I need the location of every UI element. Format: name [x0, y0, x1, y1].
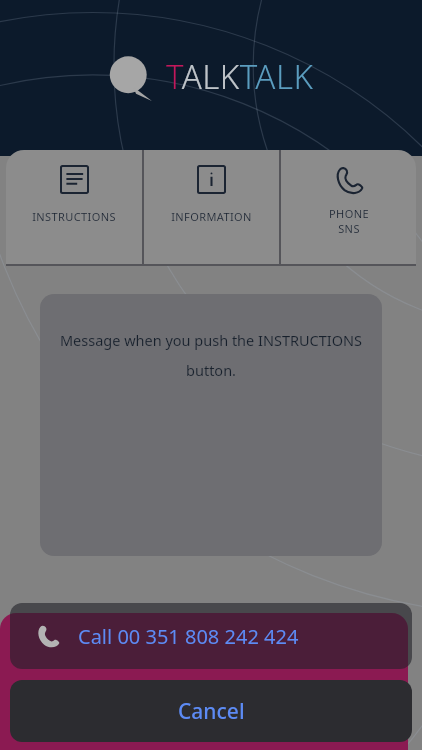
- button[interactable]: Cancel: [10, 680, 412, 742]
- button[interactable]: Information: [144, 150, 279, 266]
- other: Phone: [335, 166, 363, 194]
- staticText: TALKTALK: [166, 54, 314, 99]
- other: Instructions: [61, 166, 88, 193]
- staticText: INFORMATION: [171, 209, 252, 224]
- button[interactable]: Phone: [281, 150, 416, 266]
- staticText: Call 00 351 808 242 424: [78, 623, 299, 650]
- staticText: SNS: [338, 221, 360, 236]
- other: Information: [198, 166, 225, 193]
- button[interactable]: Call 00 351 808 242 424: [10, 603, 412, 669]
- staticText: INSTRUCTIONS: [32, 209, 116, 224]
- staticText: Cancel: [178, 697, 245, 726]
- staticText: PHONE: [329, 206, 369, 221]
- button[interactable]: Instructions: [6, 150, 142, 266]
- staticText: Message when you push the INSTRUCTIONS b…: [58, 330, 364, 381]
